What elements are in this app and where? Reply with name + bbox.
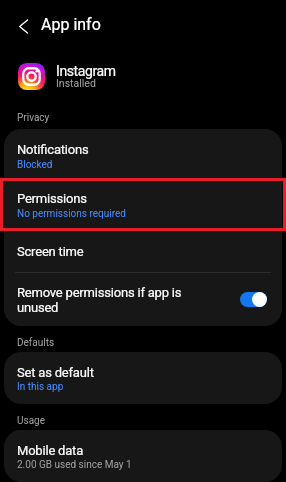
staticText: Privacy (17, 112, 50, 124)
staticText: Remove permissions if app is unused (17, 285, 224, 315)
staticText: No permissions required (17, 208, 126, 220)
button[interactable]: Permissions (4, 178, 282, 231)
staticText: In this app (17, 381, 64, 393)
staticText: 2.00 GB used since May 1 (17, 459, 132, 471)
staticText: Screen time (17, 244, 84, 259)
button[interactable]: Set as default (4, 352, 282, 404)
staticText: Permissions (17, 191, 87, 206)
staticText: Set as default (17, 365, 94, 380)
button[interactable]: Notifications (4, 129, 282, 178)
staticText: Defaults (17, 337, 55, 349)
button[interactable]: Remove permissions if app is unused togg… (240, 291, 267, 308)
staticText: Mobile data (17, 443, 84, 458)
staticText: Installed (56, 77, 96, 89)
button[interactable]: Mobile data (4, 430, 282, 482)
staticText: Instagram (56, 63, 116, 79)
button[interactable]: Back (5, 8, 41, 44)
staticText: Notifications (17, 142, 89, 157)
staticText: Blocked (17, 159, 53, 171)
button[interactable]: Remove permissions if app is unused (4, 273, 282, 326)
staticText: Usage (17, 415, 46, 427)
staticText: App info (41, 15, 101, 34)
button[interactable]: Screen time (4, 231, 282, 272)
